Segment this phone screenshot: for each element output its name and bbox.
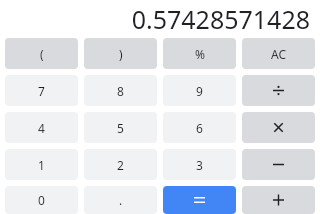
button[interactable]: 7 [5,75,78,106]
button[interactable]: 3 [163,149,236,180]
staticText: 9 [196,83,203,99]
button[interactable]: 0 [5,186,78,214]
staticText: AC [271,46,287,62]
staticText: % [195,46,205,62]
staticText: 8 [117,83,124,99]
staticText: 7 [38,83,45,99]
button[interactable]: 9 [163,75,236,106]
button[interactable]: . [84,186,157,214]
staticText: 2 [117,157,124,173]
staticText: ) [119,46,123,62]
button[interactable]: 4 [5,112,78,143]
staticText: 3 [196,157,203,173]
staticText: 5 [117,120,124,136]
staticText: 0 [38,192,45,208]
staticText: . [119,192,123,208]
button[interactable]: Divide [242,75,315,106]
button[interactable]: Equals [163,186,236,214]
staticText: 6 [196,120,203,136]
staticText: 1 [38,157,45,173]
button[interactable]: AC [242,38,315,69]
staticText: ( [40,46,44,62]
button[interactable]: 2 [84,149,157,180]
button[interactable]: 5 [84,112,157,143]
button[interactable]: Multiply [242,112,315,143]
button[interactable]: Minus [242,149,315,180]
staticText: 0.57428571428 [131,2,310,36]
button[interactable]: 8 [84,75,157,106]
button[interactable]: 1 [5,149,78,180]
button[interactable]: Plus [242,186,315,214]
staticText: 4 [38,120,45,136]
button[interactable]: ) [84,38,157,69]
button[interactable]: ( [5,38,78,69]
button[interactable]: % [163,38,236,69]
button[interactable]: 6 [163,112,236,143]
